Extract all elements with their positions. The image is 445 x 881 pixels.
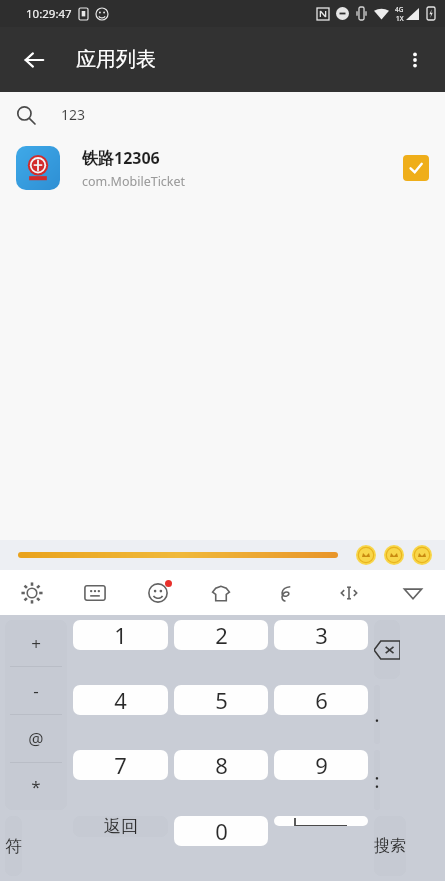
button[interactable]: Back xyxy=(12,38,56,82)
button[interactable]: Space xyxy=(274,816,368,826)
staticText: 6 xyxy=(315,685,328,715)
button[interactable]: Emoji xyxy=(126,570,189,615)
staticText: 铁路12306 xyxy=(82,147,160,169)
button[interactable]: Cursor xyxy=(317,570,381,615)
staticText: @ xyxy=(28,727,44,750)
staticText: 5 xyxy=(215,685,228,715)
staticText: 1 xyxy=(114,620,127,650)
button[interactable]: Sticker xyxy=(383,544,405,566)
staticText: . xyxy=(374,701,380,728)
button[interactable]: Hide keyboard xyxy=(381,570,445,615)
button[interactable]: Search xyxy=(0,92,445,137)
staticText: : xyxy=(374,767,380,794)
staticText: 搜索 xyxy=(374,836,406,856)
button[interactable]: 铁路12306 xyxy=(0,137,445,199)
button[interactable]: 5 xyxy=(174,685,268,715)
staticText: 10:29:47 xyxy=(26,6,72,22)
button[interactable]: 4 xyxy=(73,685,168,715)
button[interactable]: - xyxy=(5,667,67,714)
button[interactable]: : xyxy=(374,750,380,810)
staticText: com.MobileTicket xyxy=(82,173,186,190)
staticText: + xyxy=(31,632,41,655)
staticText: * xyxy=(31,775,41,798)
button[interactable]: 2 xyxy=(174,620,268,650)
button[interactable]: + xyxy=(5,620,67,666)
button[interactable]: Backspace xyxy=(374,620,400,679)
button[interactable]: 符 xyxy=(5,816,22,876)
staticText: 应用列表 xyxy=(76,47,156,72)
button[interactable]: 1 xyxy=(73,620,168,650)
button[interactable]: @ xyxy=(5,715,67,762)
button[interactable]: Sticker xyxy=(355,544,377,566)
staticText: 2 xyxy=(215,620,228,650)
staticText: 123 xyxy=(61,105,86,124)
staticText: 返回 xyxy=(104,816,138,837)
button[interactable]: Sticker xyxy=(411,544,433,566)
staticText: 1X xyxy=(396,14,404,23)
staticText: 符 xyxy=(5,836,22,857)
button[interactable]: Settings xyxy=(0,570,63,615)
staticText: 9 xyxy=(315,750,328,780)
staticText: 4 xyxy=(114,685,127,715)
staticText: 0 xyxy=(215,816,228,846)
staticText: 8 xyxy=(215,750,228,780)
button[interactable]: 6 xyxy=(274,685,368,715)
button[interactable]: 搜索 xyxy=(374,816,406,876)
button[interactable]: 9 xyxy=(274,750,368,780)
staticText: 4G xyxy=(395,5,404,14)
button[interactable]: . xyxy=(374,685,380,744)
button[interactable]: Keyboard xyxy=(63,570,126,615)
staticText: 3 xyxy=(315,620,328,650)
button[interactable]: 返回 xyxy=(73,816,168,837)
button[interactable]: More options xyxy=(393,38,437,82)
other: Search xyxy=(16,105,36,125)
button[interactable]: 0 xyxy=(174,816,268,846)
staticText: 7 xyxy=(114,750,127,780)
button[interactable]: Selected xyxy=(403,155,429,181)
button[interactable]: 3 xyxy=(274,620,368,650)
button[interactable]: Handwriting xyxy=(253,570,317,615)
button[interactable]: * xyxy=(5,763,67,810)
button[interactable]: Theme xyxy=(189,570,253,615)
button[interactable]: 7 xyxy=(73,750,168,780)
staticText: - xyxy=(33,679,39,702)
button[interactable]: 8 xyxy=(174,750,268,780)
